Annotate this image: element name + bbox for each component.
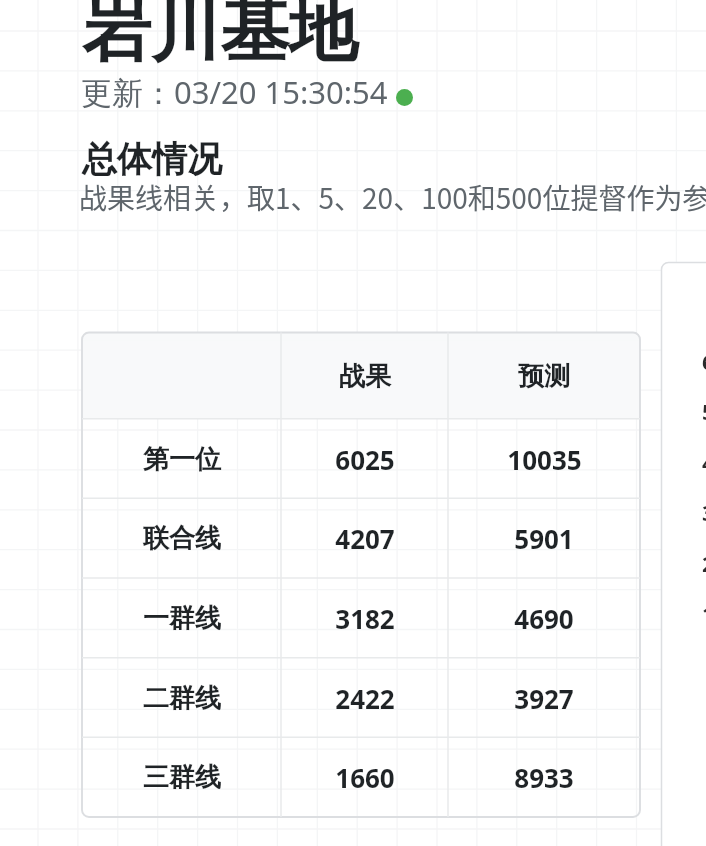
staticText: 更新：03/20 15:30:54: [81, 71, 388, 111]
button[interactable]: 更新：03/20 15:30:54: [81, 71, 421, 111]
staticText: 5901: [514, 521, 574, 556]
staticText: 3000: [702, 497, 706, 525]
staticText: 8933: [514, 760, 574, 795]
staticText: 1660: [335, 760, 395, 795]
staticText: 4000: [702, 447, 706, 475]
button[interactable]: [82, 498, 640, 578]
button[interactable]: [82, 737, 640, 817]
staticText: 10035: [507, 442, 582, 477]
staticText: 三群线: [143, 761, 221, 794]
staticText: 3182: [335, 601, 395, 636]
staticText: 4207: [335, 521, 395, 556]
staticText: 5000: [702, 396, 706, 424]
staticText: 联合线: [143, 522, 221, 555]
button[interactable]: [82, 419, 640, 499]
staticText: 二群线: [143, 682, 221, 715]
staticText: 1000: [702, 598, 706, 626]
staticText: 6000: [702, 346, 706, 374]
staticText: 3927: [514, 681, 574, 716]
button[interactable]: 总体情况: [82, 137, 222, 181]
staticText: 一群线: [143, 602, 221, 635]
staticText: 战果线相关，取1、5、20、100和500位提督作为参考: [79, 177, 706, 218]
staticText: 2000: [702, 548, 706, 576]
staticText: 总体情况: [82, 137, 222, 181]
staticText: 预测: [518, 360, 570, 393]
button[interactable]: [82, 578, 640, 658]
staticText: 4690: [514, 601, 574, 636]
staticText: 2422: [335, 681, 395, 716]
staticText: 岩川基地: [82, 0, 358, 75]
staticText: 6025: [335, 442, 395, 477]
other: 在线状态: [396, 89, 413, 106]
button[interactable]: 岩川基地: [82, 0, 358, 75]
button[interactable]: [82, 658, 640, 738]
staticText: 战果: [339, 360, 391, 393]
staticText: 第一位: [143, 443, 221, 476]
